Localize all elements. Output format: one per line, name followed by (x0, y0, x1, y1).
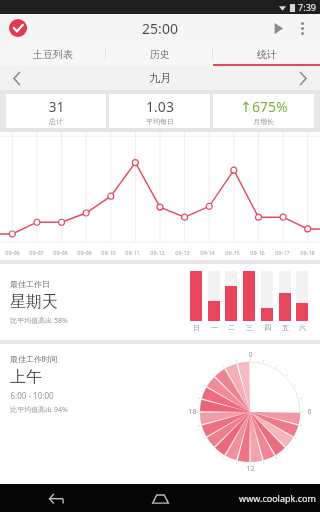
staticText: 土豆列表 (33, 48, 73, 61)
staticText: 日 (193, 323, 200, 332)
staticText: 最佳工作日 (10, 279, 50, 289)
staticText: 平均每日 (146, 117, 174, 126)
staticText: 09-14 (200, 249, 215, 256)
staticText: 六 (299, 323, 306, 332)
staticText: 历史 (150, 48, 170, 61)
staticText: 总计 (49, 117, 63, 126)
staticText: 12 (246, 464, 255, 474)
staticText: 最佳工作时间 (10, 354, 58, 364)
button[interactable]: More options (290, 16, 314, 40)
staticText: 1.03 (146, 97, 174, 116)
staticText: 09-12 (150, 249, 165, 256)
button[interactable]: 1.03 (109, 94, 210, 128)
staticText: 09-16 (250, 249, 265, 256)
button[interactable]: 历史 (106, 42, 213, 66)
staticText: 比平均值高出 94% (10, 405, 68, 415)
staticText: 6 (307, 407, 312, 417)
staticText: 09-18 (300, 249, 315, 256)
button[interactable]: App logo (8, 18, 28, 38)
staticText: 比平均值高出 58% (10, 316, 68, 326)
staticText: 6:00 - 10:00 (10, 390, 54, 401)
button[interactable]: Start timer (266, 16, 290, 40)
staticText: 五 (282, 323, 289, 332)
button[interactable]: Back (40, 484, 74, 512)
staticText: 09-08 (53, 249, 68, 256)
staticText: 星期天 (10, 292, 58, 312)
staticText: 09-15 (225, 249, 240, 256)
staticText: 09-06 (5, 249, 20, 256)
staticText: 0 (248, 350, 253, 360)
staticText: 统计 (257, 48, 277, 61)
staticText: 三 (246, 323, 253, 332)
button[interactable]: 土豆列表 (0, 42, 106, 66)
staticText: 二 (228, 323, 235, 332)
staticText: 09-10 (101, 249, 116, 256)
button[interactable]: 最佳工作日 (0, 264, 320, 340)
staticText: 上午 (10, 367, 42, 387)
staticText: 09-09 (77, 249, 92, 256)
staticText: 31 (48, 97, 65, 116)
staticText: 四 (264, 323, 271, 332)
staticText: 09-17 (275, 249, 290, 256)
staticText: www.coolapk.com (239, 492, 316, 504)
button[interactable]: 09-06 (0, 132, 320, 260)
button[interactable]: 31 (6, 94, 106, 128)
staticText: ↑675% (240, 97, 288, 116)
staticText: 7:39 (298, 1, 316, 13)
button[interactable]: 统计 (213, 42, 320, 66)
button[interactable]: Previous month (0, 66, 34, 90)
button[interactable]: Next month (286, 66, 320, 90)
staticText: 一 (211, 323, 218, 332)
button[interactable]: 最佳工作时间 (0, 344, 320, 484)
staticText: 09-07 (29, 249, 44, 256)
button[interactable]: ↑675% (213, 94, 314, 128)
staticText: 25:00 (142, 19, 178, 38)
staticText: 18 (188, 407, 197, 417)
staticText: 09-11 (125, 249, 140, 256)
staticText: 09-13 (175, 249, 190, 256)
button[interactable]: Home (143, 484, 177, 512)
staticText: 月增长 (253, 117, 274, 126)
staticText: 九月 (149, 71, 171, 85)
